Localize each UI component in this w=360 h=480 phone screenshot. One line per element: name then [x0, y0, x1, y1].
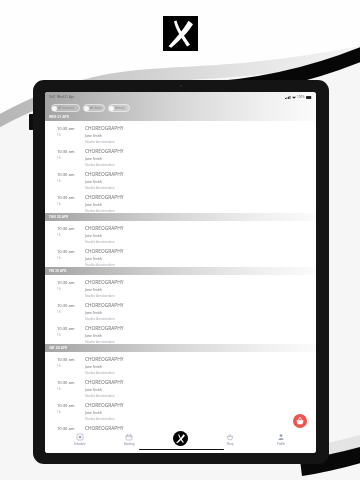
staticText: Studio Amsterdam — [85, 393, 115, 398]
staticText: Studio Amsterdam — [85, 293, 115, 298]
staticText: Jane Smith — [85, 256, 102, 261]
staticText: Studio Amsterdam — [85, 162, 115, 167]
button[interactable]: 10:30 am — [45, 375, 316, 398]
staticText: Jane Smith — [85, 156, 102, 161]
staticText: 9:41 Wed 21 Apr — [49, 95, 75, 99]
staticText: Jane Smith — [85, 202, 102, 207]
button[interactable]: 10:30 am — [45, 398, 316, 421]
staticText: Shop — [227, 442, 234, 446]
staticText: 1h — [57, 410, 61, 414]
staticText: Studio Amsterdam — [85, 370, 115, 375]
button[interactable]: 10:30 am — [45, 190, 316, 213]
staticText: 10:30 am — [57, 326, 75, 332]
staticText: Studio Amsterdam — [85, 208, 115, 213]
staticText: 1h — [57, 202, 61, 206]
button[interactable]: 10:30 am — [45, 298, 316, 321]
staticText: CHOREOGRAPHY — [85, 148, 124, 155]
staticText: CHOREOGRAPHY — [85, 356, 124, 363]
staticText: CHOREOGRAPHY — [85, 171, 124, 178]
staticText: 10:30 am — [57, 280, 75, 286]
button[interactable]: All locations — [51, 104, 80, 112]
staticText: Jane Smith — [85, 310, 102, 315]
staticText: 100% — [297, 95, 305, 99]
staticText: Schedule — [74, 442, 86, 446]
staticText: CHOREOGRAPHY — [85, 302, 124, 309]
staticText: Jane Smith — [85, 287, 102, 292]
staticText: 1h — [57, 387, 61, 391]
staticText: 10:30 am — [57, 172, 75, 178]
button[interactable]: Cart — [293, 414, 307, 428]
staticText: 1h — [57, 133, 61, 137]
staticText: 1h — [57, 256, 61, 260]
staticText: FRI 23 APR — [49, 269, 67, 273]
staticText: 10:30 am — [57, 426, 75, 432]
staticText: All dates — [90, 106, 102, 110]
staticText: 10:30 am — [57, 357, 75, 363]
button[interactable]: 10:30 am — [45, 275, 316, 298]
staticText: 10:30 am — [57, 226, 75, 232]
staticText: CHOREOGRAPHY — [85, 425, 124, 432]
staticText: CHOREOGRAPHY — [85, 379, 124, 386]
staticText: 1h — [57, 287, 61, 291]
staticText: CHOREOGRAPHY — [85, 225, 124, 232]
staticText: Jane Smith — [85, 333, 102, 338]
staticText: CHOREOGRAPHY — [85, 325, 124, 332]
staticText: All locations — [58, 106, 75, 110]
staticText: Jane Smith — [85, 133, 102, 138]
button[interactable]: 10:30 am — [45, 244, 316, 267]
button[interactable]: 10:30 am — [45, 144, 316, 167]
button[interactable]: 10:30 am — [45, 352, 316, 375]
button[interactable]: Schedule — [67, 434, 93, 446]
staticText: 1h — [57, 156, 61, 160]
staticText: 10:30 am — [57, 249, 75, 255]
button[interactable]: Logo — [163, 16, 198, 51]
button[interactable]: 10:30 am — [45, 121, 316, 144]
staticText: 1h — [57, 364, 61, 368]
staticText: Jane Smith — [85, 410, 102, 415]
staticText: 10:30 am — [57, 195, 75, 201]
staticText: Jane Smith — [85, 364, 102, 369]
button[interactable]: 10:30 am — [45, 167, 316, 190]
staticText: CHOREOGRAPHY — [85, 402, 124, 409]
staticText: CHOREOGRAPHY — [85, 248, 124, 255]
staticText: Studio Amsterdam — [85, 416, 115, 421]
staticText: Jane Smith — [85, 387, 102, 392]
staticText: Studio Amsterdam — [85, 185, 115, 190]
button[interactable]: 10:30 am — [45, 421, 316, 432]
staticText: Activity — [115, 106, 125, 110]
button[interactable]: All dates — [83, 104, 105, 112]
staticText: SAT 24 APR — [49, 346, 68, 350]
staticText: CHOREOGRAPHY — [85, 194, 124, 201]
button[interactable]: Profile — [268, 434, 294, 446]
staticText: Studio Amsterdam — [85, 262, 115, 267]
button[interactable]: Home — [173, 431, 188, 446]
staticText: 10:30 am — [57, 403, 75, 409]
button[interactable]: Shop — [217, 434, 243, 446]
staticText: Studio Amsterdam — [85, 239, 115, 244]
staticText: 10:30 am — [57, 380, 75, 386]
staticText: CHOREOGRAPHY — [85, 279, 124, 286]
staticText: Studio Amsterdam — [85, 139, 115, 144]
button[interactable]: 10:30 am — [45, 321, 316, 344]
staticText: Jane Smith — [85, 233, 102, 238]
staticText: Jane Smith — [85, 179, 102, 184]
staticText: Profile — [277, 442, 286, 446]
staticText: Studio Amsterdam — [85, 339, 115, 344]
button[interactable]: Activity — [108, 104, 130, 112]
staticText: WED 21 APR — [49, 115, 69, 119]
staticText: 1h — [57, 233, 61, 237]
button[interactable]: Booking — [116, 434, 142, 446]
staticText: Booking — [124, 442, 135, 446]
staticText: 1h — [57, 179, 61, 183]
staticText: CHOREOGRAPHY — [85, 125, 124, 132]
staticText: 1h — [57, 333, 61, 337]
staticText: 10:30 am — [57, 303, 75, 309]
staticText: 10:30 am — [57, 126, 75, 132]
staticText: THU 22 APR — [49, 215, 69, 219]
staticText: 10:30 am — [57, 149, 75, 155]
button[interactable]: 10:30 am — [45, 221, 316, 244]
staticText: 1h — [57, 310, 61, 314]
staticText: Studio Amsterdam — [85, 316, 115, 321]
